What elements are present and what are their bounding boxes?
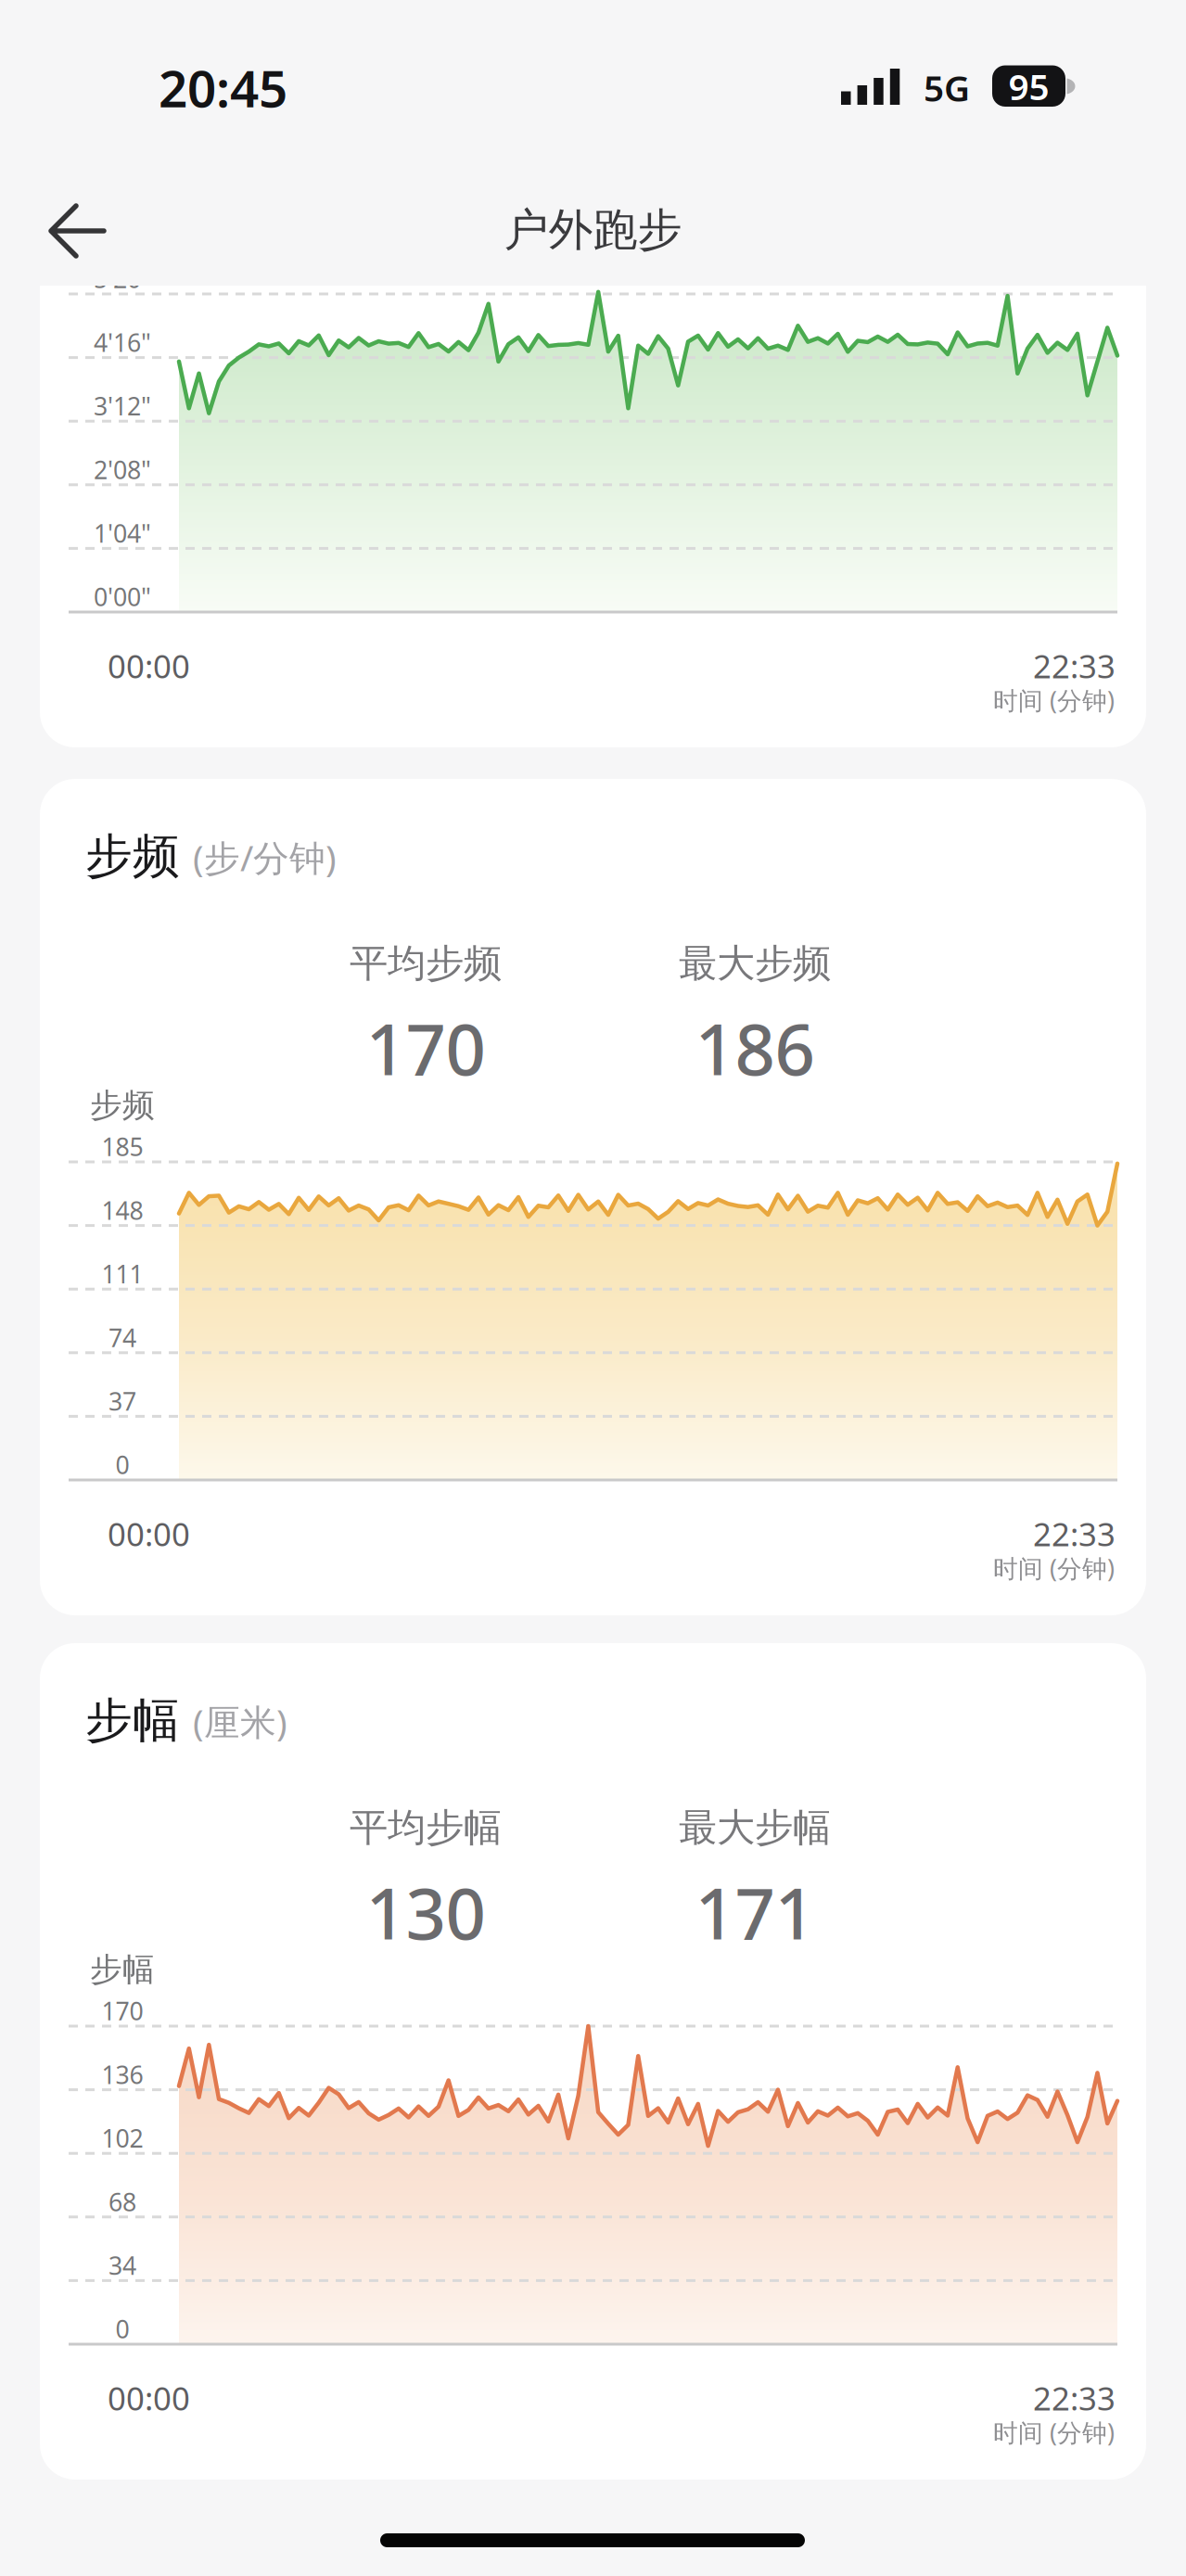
staticText: 步频 — [85, 828, 180, 885]
staticText: 22:33 — [1033, 644, 1116, 687]
staticText: 185 — [102, 1130, 143, 1163]
staticText: 111 — [102, 1257, 143, 1290]
staticText: 5'20" — [94, 262, 151, 295]
staticText: 5G — [924, 64, 970, 111]
staticText: 平均步幅 — [350, 1804, 502, 1851]
staticText: 95 — [1008, 62, 1049, 110]
staticText: 170 — [366, 1001, 485, 1095]
staticText: 37 — [108, 1385, 136, 1417]
staticText: 配速 — [90, 218, 155, 257]
staticText: 4'16" — [94, 326, 151, 359]
staticText: (步/分钟) — [193, 833, 337, 881]
staticText: 00:00 — [108, 1512, 190, 1555]
staticText: 步幅 — [85, 1692, 180, 1749]
staticText: 00:00 — [108, 2377, 190, 2419]
staticText: 171 — [695, 1865, 815, 1959]
staticText: 步幅 — [90, 1950, 155, 1989]
staticText: 步频 — [90, 1086, 155, 1125]
button[interactable]: Back — [38, 194, 115, 268]
staticText: 00:00 — [108, 644, 190, 687]
staticText: 最大步幅 — [679, 1804, 831, 1851]
staticText: 平均步频 — [350, 940, 502, 987]
staticText: 20:45 — [159, 54, 287, 121]
staticText: 34 — [108, 2249, 136, 2282]
staticText: 186 — [695, 1001, 815, 1095]
staticText: 170 — [102, 1994, 143, 2027]
staticText: 最大步频 — [679, 940, 831, 987]
staticText: 0 — [115, 2312, 129, 2345]
staticText: 130 — [366, 1865, 485, 1959]
staticText: 时间 (分钟) — [993, 1552, 1115, 1584]
staticText: 136 — [102, 2058, 143, 2091]
staticText: 时间 (分钟) — [993, 684, 1115, 717]
staticText: (厘米) — [193, 1698, 287, 1745]
staticText: 户外跑步 — [504, 203, 682, 257]
staticText: 3'12" — [671, 133, 838, 227]
staticText: 0 — [115, 1448, 129, 1481]
staticText: 时间 (分钟) — [993, 2416, 1115, 2449]
staticText: 0'00" — [94, 580, 151, 613]
staticText: 3'12" — [94, 389, 151, 422]
staticText: 74 — [108, 1321, 136, 1354]
staticText: 102 — [102, 2122, 143, 2154]
staticText: 68 — [108, 2185, 136, 2218]
staticText: 1'04" — [94, 517, 151, 550]
staticText: 2'08" — [94, 453, 151, 486]
staticText: 148 — [102, 1194, 143, 1227]
staticText: 22:33 — [1033, 1512, 1116, 1555]
staticText: 22:33 — [1033, 2377, 1116, 2419]
